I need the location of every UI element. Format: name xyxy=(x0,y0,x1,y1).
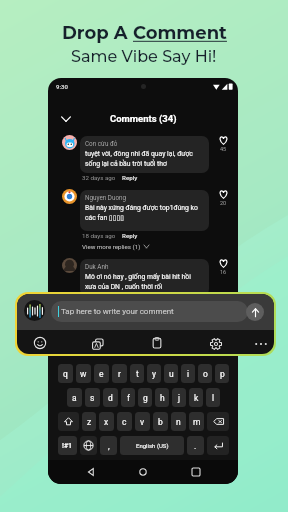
button[interactable]: backspace xyxy=(207,412,229,431)
button[interactable]: Con cừu đỏ xyxy=(85,140,204,168)
staticText: m xyxy=(193,417,201,427)
button[interactable]: y xyxy=(147,364,161,383)
staticText: Tap here to write your comment xyxy=(61,307,174,316)
button[interactable]: r xyxy=(112,364,127,383)
button[interactable]: !#1 xyxy=(58,436,77,455)
staticText: p xyxy=(220,369,225,379)
button[interactable]: More options xyxy=(250,333,272,354)
button[interactable]: i xyxy=(181,364,195,383)
staticText: 45 xyxy=(220,146,227,152)
staticText: 20 xyxy=(220,200,227,206)
button[interactable]: e xyxy=(94,364,109,383)
button[interactable]: Collapse xyxy=(57,110,74,127)
staticText: 16 xyxy=(220,269,227,275)
button[interactable]: m xyxy=(189,412,204,431)
staticText: Nguyen Duong xyxy=(85,194,127,201)
button[interactable]: d xyxy=(103,388,118,407)
button[interactable]: Reply xyxy=(122,174,138,181)
button[interactable]: g xyxy=(138,388,152,407)
staticText: r xyxy=(118,369,121,379)
staticText: 32 days ago xyxy=(82,174,116,181)
button[interactable]: Clipboard xyxy=(146,332,168,354)
button[interactable]: Back xyxy=(81,462,101,482)
button[interactable]: p xyxy=(215,364,229,383)
staticText: w xyxy=(80,369,87,379)
button[interactable]: Settings xyxy=(205,333,227,354)
staticText: a xyxy=(72,393,77,403)
button[interactable]: v xyxy=(135,412,150,431)
button[interactable]: s xyxy=(85,388,100,407)
button[interactable]: j xyxy=(172,388,186,407)
button[interactable]: Home xyxy=(133,462,153,482)
staticText: Duk Anh xyxy=(85,263,109,270)
button[interactable]: n xyxy=(171,412,186,431)
staticText: e xyxy=(99,369,104,379)
staticText: 18 days ago xyxy=(82,232,116,239)
staticText: Comments (34) xyxy=(110,113,177,124)
button[interactable]: Like xyxy=(213,136,233,152)
staticText: , xyxy=(108,441,110,451)
staticText: l xyxy=(212,393,215,403)
staticText: s xyxy=(90,393,95,403)
staticText: b xyxy=(158,417,163,427)
button[interactable]: o xyxy=(198,364,212,383)
button[interactable]: z xyxy=(82,412,96,431)
button[interactable]: Reply xyxy=(122,232,138,239)
staticText: x xyxy=(104,417,109,427)
staticText: Bài này xứng đáng được top1đúng ko các f… xyxy=(85,204,198,222)
button[interactable]: enter xyxy=(207,436,229,455)
staticText: Con cừu đỏ xyxy=(85,140,118,147)
staticText: i xyxy=(187,369,190,379)
staticText: !#1 xyxy=(62,442,73,450)
staticText: tuyệt vời, đông nhi đã quay lại, được số… xyxy=(85,150,193,168)
staticText: 9:30 xyxy=(56,83,68,90)
staticText: Mô ơi nó hay , giống mấy bài hit hồi xưa… xyxy=(85,273,191,291)
button[interactable]: View more replies (1) xyxy=(82,243,149,250)
button[interactable]: b xyxy=(153,412,168,431)
staticText: h xyxy=(160,393,165,403)
staticText: o xyxy=(203,369,208,379)
staticText: z xyxy=(87,417,92,427)
staticText: Same Vibe Say Hi! xyxy=(71,47,217,67)
button[interactable]: globe xyxy=(80,436,97,455)
staticText: q xyxy=(63,369,68,379)
button[interactable]: Like xyxy=(213,259,233,275)
button[interactable]: , xyxy=(100,436,117,455)
button[interactable]: q xyxy=(58,364,73,383)
staticText: u xyxy=(169,369,174,379)
staticText: Comment xyxy=(133,22,227,44)
button[interactable]: Send xyxy=(246,303,264,321)
button[interactable]: Like xyxy=(213,190,233,206)
button[interactable]: x xyxy=(99,412,114,431)
button[interactable]: c xyxy=(117,412,132,431)
staticText: j xyxy=(178,393,181,403)
staticText: f xyxy=(127,393,130,403)
button[interactable]: . xyxy=(187,436,204,455)
staticText: n xyxy=(176,417,181,427)
staticText: English (US) xyxy=(136,442,169,449)
button[interactable]: k xyxy=(189,388,203,407)
staticText: y xyxy=(152,369,157,379)
button[interactable]: Emoji xyxy=(29,332,51,354)
button[interactable]: t xyxy=(130,364,144,383)
button[interactable]: a xyxy=(67,388,82,407)
button[interactable]: Recents xyxy=(186,462,206,482)
button[interactable]: Stickers xyxy=(87,333,109,354)
staticText: c xyxy=(122,417,127,427)
staticText: d xyxy=(108,393,113,403)
button[interactable]: Nguyen Duong xyxy=(85,194,204,222)
staticText: Drop A xyxy=(62,22,133,44)
staticText: v xyxy=(140,417,145,427)
button[interactable]: Tap here to write your comment xyxy=(51,301,248,322)
button[interactable]: Duk Anh xyxy=(85,263,204,291)
button[interactable]: Voice input xyxy=(24,300,45,321)
staticText: k xyxy=(194,393,199,403)
button[interactable]: shift xyxy=(58,412,79,431)
button[interactable]: u xyxy=(164,364,178,383)
button[interactable]: l xyxy=(206,388,220,407)
button[interactable]: f xyxy=(121,388,135,407)
staticText: View more replies (1) xyxy=(82,243,141,250)
button[interactable]: w xyxy=(76,364,91,383)
button[interactable]: h xyxy=(155,388,169,407)
button[interactable]: English (US) xyxy=(120,436,184,455)
